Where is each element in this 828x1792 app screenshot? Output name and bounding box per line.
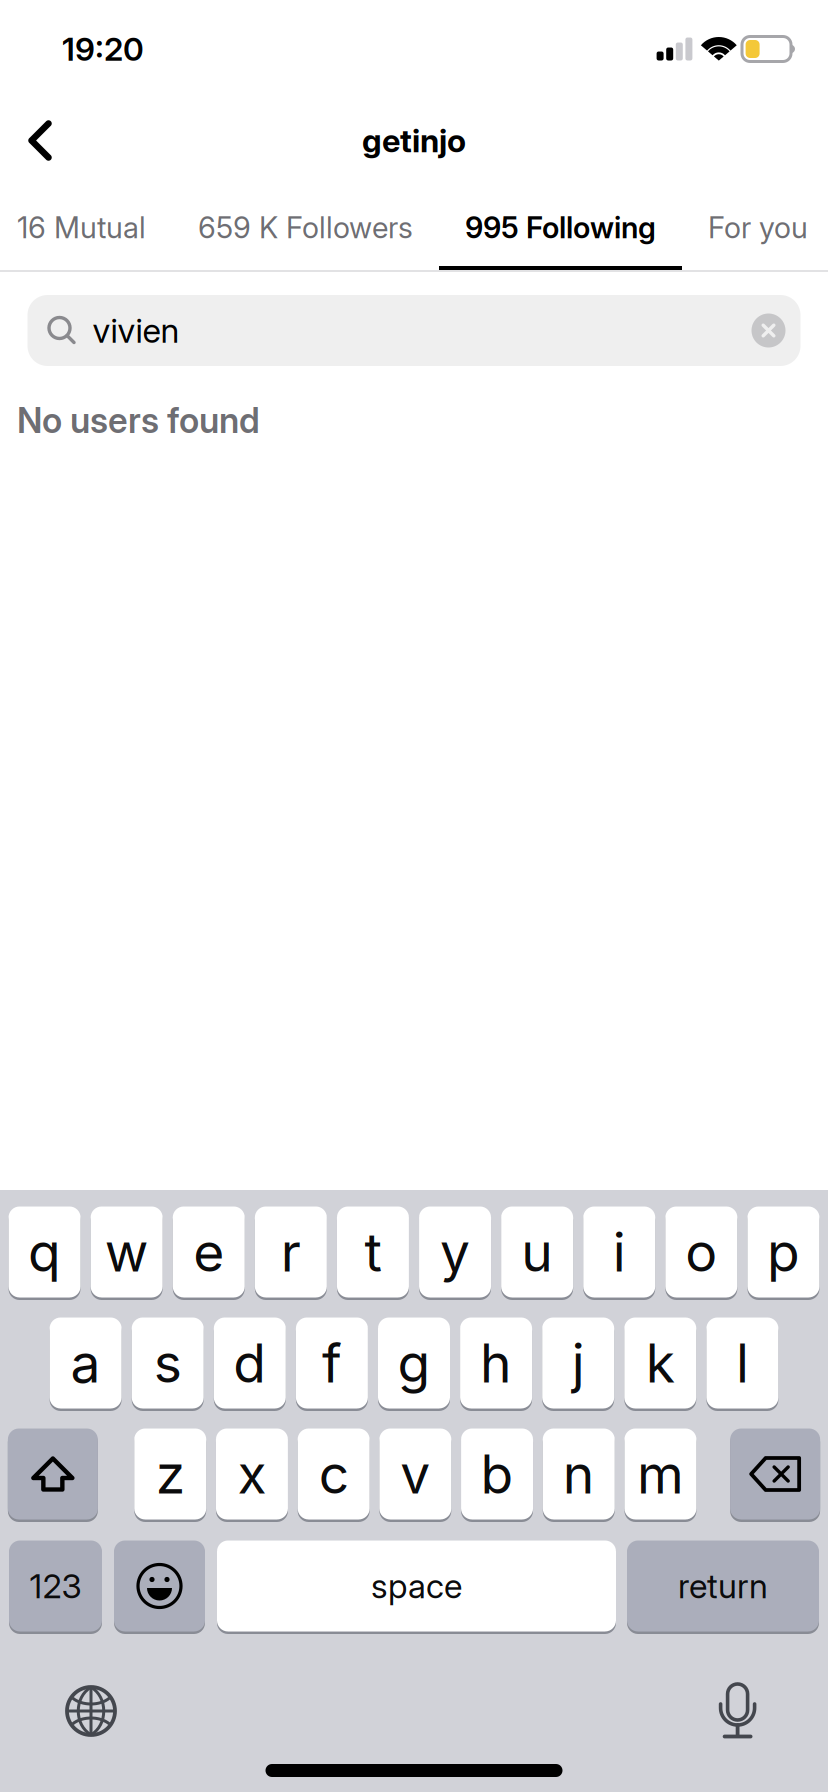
button[interactable]: 16 Mutual xyxy=(0,193,172,270)
button[interactable]: o xyxy=(665,1205,737,1299)
staticText: t xyxy=(364,1220,381,1283)
button[interactable]: k xyxy=(624,1316,696,1410)
staticText: n xyxy=(563,1442,595,1505)
button[interactable] xyxy=(730,1427,820,1521)
button[interactable]: i xyxy=(583,1205,655,1299)
staticText: h xyxy=(480,1331,512,1394)
button[interactable]: f xyxy=(296,1316,368,1410)
staticText: x xyxy=(237,1442,266,1505)
staticText: c xyxy=(319,1442,349,1505)
button[interactable]: a xyxy=(50,1316,122,1410)
button[interactable]: Clear search xyxy=(742,304,794,356)
button[interactable]: r xyxy=(255,1205,327,1299)
staticText: vivien xyxy=(92,311,179,350)
button[interactable]: d xyxy=(214,1316,286,1410)
button[interactable]: space xyxy=(217,1539,616,1633)
staticText: space xyxy=(371,1566,462,1606)
button[interactable]: e xyxy=(173,1205,245,1299)
staticText: w xyxy=(105,1220,149,1283)
button[interactable]: Next keyboard xyxy=(47,1667,135,1755)
button[interactable]: Dictation xyxy=(694,1667,782,1755)
button[interactable]: g xyxy=(378,1316,450,1410)
button[interactable]: 123 xyxy=(9,1539,102,1633)
staticText: b xyxy=(480,1442,513,1505)
staticText: 995 Following xyxy=(465,210,656,245)
button[interactable]: h xyxy=(460,1316,532,1410)
button[interactable]: n xyxy=(543,1427,615,1521)
staticText: p xyxy=(767,1220,800,1283)
button[interactable] xyxy=(8,1427,98,1521)
staticText: r xyxy=(281,1220,301,1283)
button[interactable]: x xyxy=(216,1427,288,1521)
staticText: m xyxy=(637,1442,684,1505)
staticText: f xyxy=(322,1331,342,1394)
button[interactable]: m xyxy=(624,1427,696,1521)
staticText: For you xyxy=(708,210,808,245)
button[interactable]: u xyxy=(501,1205,573,1299)
staticText: d xyxy=(233,1331,266,1394)
button[interactable] xyxy=(114,1539,205,1633)
staticText: v xyxy=(400,1442,430,1505)
staticText: o xyxy=(685,1220,717,1283)
staticText: j xyxy=(572,1331,585,1394)
button[interactable]: l xyxy=(706,1316,778,1410)
button[interactable]: c xyxy=(298,1427,370,1521)
button[interactable]: 659 K Followers xyxy=(172,193,439,270)
staticText: 123 xyxy=(29,1566,81,1606)
button[interactable]: j xyxy=(542,1316,614,1410)
button[interactable]: For you xyxy=(682,193,828,270)
button[interactable]: Back xyxy=(4,104,76,176)
staticText: g xyxy=(397,1331,430,1394)
button[interactable]: t xyxy=(337,1205,409,1299)
staticText: s xyxy=(154,1331,182,1394)
button[interactable]: 995 Following xyxy=(439,193,682,270)
button[interactable]: b xyxy=(461,1427,533,1521)
button[interactable]: return xyxy=(627,1539,819,1633)
staticText: 16 Mutual xyxy=(17,210,146,245)
button[interactable]: y xyxy=(419,1205,491,1299)
button[interactable]: z xyxy=(134,1427,206,1521)
staticText: 659 K Followers xyxy=(198,210,413,245)
staticText: k xyxy=(646,1331,675,1394)
staticText: 19:20 xyxy=(62,30,144,68)
staticText: q xyxy=(28,1220,61,1283)
button[interactable]: q xyxy=(9,1205,81,1299)
staticText: u xyxy=(521,1220,553,1283)
button[interactable]: v xyxy=(379,1427,451,1521)
staticText: i xyxy=(613,1220,626,1283)
staticText: getinjo xyxy=(362,122,466,159)
staticText: y xyxy=(440,1220,470,1283)
button[interactable]: s xyxy=(132,1316,204,1410)
staticText: return xyxy=(678,1566,768,1606)
button[interactable]: w xyxy=(91,1205,163,1299)
staticText: e xyxy=(193,1220,224,1283)
staticText: z xyxy=(156,1442,185,1505)
staticText: No users found xyxy=(17,400,260,441)
staticText: a xyxy=(71,1331,101,1394)
staticText: l xyxy=(736,1331,749,1394)
button[interactable]: p xyxy=(747,1205,819,1299)
